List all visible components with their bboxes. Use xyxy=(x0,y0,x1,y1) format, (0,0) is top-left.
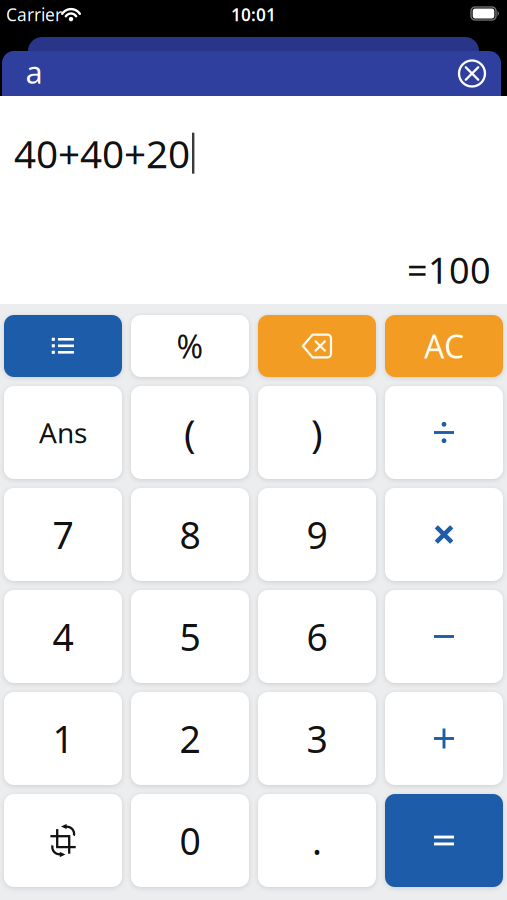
staticText: 10:01 xyxy=(231,3,276,26)
button[interactable]: 0 xyxy=(131,794,249,887)
staticText: 1 xyxy=(52,714,73,763)
staticText: AC xyxy=(424,325,464,367)
button[interactable]: Ans xyxy=(4,386,122,479)
button[interactable]: 6 xyxy=(258,590,376,683)
staticText: 0 xyxy=(179,816,200,865)
staticText: 4 xyxy=(52,612,73,661)
button[interactable] xyxy=(385,386,503,479)
button[interactable]: ( xyxy=(131,386,249,479)
staticText: ( xyxy=(184,407,196,458)
staticText: 2 xyxy=(179,714,200,763)
button[interactable] xyxy=(385,794,503,887)
button[interactable]: 2 xyxy=(131,692,249,785)
staticText: =100 xyxy=(407,246,491,294)
button[interactable]: 3 xyxy=(258,692,376,785)
button[interactable]: 9 xyxy=(258,488,376,581)
button[interactable]: 7 xyxy=(4,488,122,581)
staticText: a xyxy=(25,51,42,92)
button[interactable]: 1 xyxy=(4,692,122,785)
staticText: . xyxy=(312,816,322,865)
button[interactable] xyxy=(258,315,376,377)
staticText: 5 xyxy=(179,612,200,661)
button[interactable] xyxy=(385,692,503,785)
staticText: 3 xyxy=(306,714,327,763)
button[interactable]: ) xyxy=(258,386,376,479)
button[interactable] xyxy=(4,794,122,887)
staticText: 9 xyxy=(306,510,327,559)
button[interactable] xyxy=(458,59,486,87)
button[interactable]: 4 xyxy=(4,590,122,683)
button[interactable]: . xyxy=(258,794,376,887)
button[interactable]: % xyxy=(131,315,249,377)
button[interactable]: AC xyxy=(385,315,503,377)
staticText: Carrier xyxy=(6,3,62,26)
button[interactable] xyxy=(385,590,503,683)
button[interactable]: 5 xyxy=(131,590,249,683)
staticText: 7 xyxy=(52,510,73,559)
staticText: ) xyxy=(311,407,323,458)
button[interactable] xyxy=(385,488,503,581)
staticText: 40+40+20 xyxy=(14,127,190,179)
staticText: 8 xyxy=(179,510,200,559)
staticText: Ans xyxy=(39,414,87,451)
button[interactable] xyxy=(4,315,122,377)
staticText: % xyxy=(176,325,203,367)
staticText: 6 xyxy=(306,612,327,661)
button[interactable]: 8 xyxy=(131,488,249,581)
